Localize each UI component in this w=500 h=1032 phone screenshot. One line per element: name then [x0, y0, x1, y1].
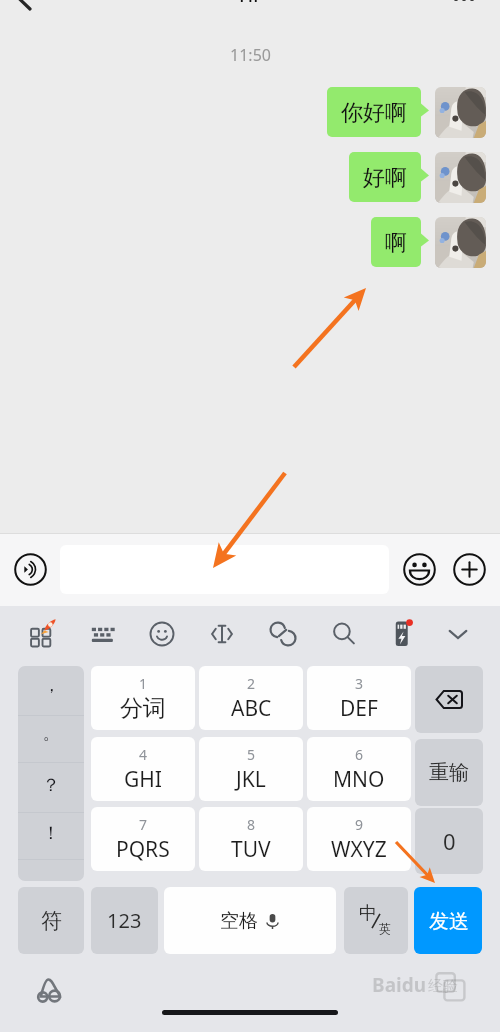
button[interactable]: 发送 [414, 887, 482, 954]
button[interactable]: 重输 [415, 739, 483, 806]
button[interactable]: cursor [202, 614, 242, 654]
button[interactable]: 9 [307, 807, 411, 871]
button[interactable]: link [263, 614, 303, 654]
staticText: 11:50 [230, 44, 271, 66]
button[interactable] [435, 152, 486, 203]
staticText: TUV [231, 835, 271, 864]
button[interactable]: 1 [91, 666, 195, 730]
button[interactable]: 5 [199, 737, 303, 801]
button[interactable]: 符 [18, 887, 84, 954]
staticText: 经验 [428, 977, 458, 996]
button[interactable]: Back [4, 0, 44, 14]
button[interactable] [435, 87, 486, 138]
button[interactable]: search [324, 614, 364, 654]
button[interactable]: ！ [18, 812, 84, 859]
button[interactable]: 2 [199, 666, 303, 730]
staticText: 1 [139, 674, 148, 693]
staticText: 你好啊 [341, 99, 407, 127]
staticText: WXYZ [331, 835, 387, 864]
staticText: 9 [355, 815, 364, 834]
staticText: 6 [355, 745, 364, 764]
button[interactable]: 4 [91, 737, 195, 801]
button[interactable]: down [438, 614, 478, 654]
staticText: 123 [107, 907, 142, 934]
button[interactable]: 空格 [164, 887, 336, 954]
button[interactable]: ， [18, 666, 84, 715]
button[interactable]: 你好啊 [327, 87, 421, 137]
staticText: 空格 [220, 909, 258, 933]
button[interactable] [435, 217, 486, 268]
staticText: 好啊 [363, 164, 407, 192]
staticText: 中 [359, 902, 377, 925]
button[interactable]: k40 [382, 614, 422, 654]
button[interactable] [60, 545, 389, 594]
staticText: 3 [355, 674, 364, 693]
button[interactable]: 7 [91, 807, 195, 871]
staticText: JKL [236, 765, 266, 794]
staticText: DEF [340, 694, 378, 723]
button[interactable]: ？ [18, 762, 84, 812]
staticText: 重输 [429, 760, 469, 785]
staticText: GHI [124, 765, 162, 794]
staticText: 5 [247, 745, 256, 764]
button[interactable]: 好啊 [349, 152, 421, 202]
staticText: 0 [443, 826, 456, 856]
staticText: Hi [239, 0, 259, 8]
button[interactable]: 6 [307, 737, 411, 801]
button[interactable]: More options [453, 553, 486, 586]
button[interactable]: 。 [18, 715, 84, 762]
staticText: 啊 [385, 229, 407, 257]
staticText: Baidu [372, 972, 427, 998]
button[interactable]: kbd [83, 614, 123, 654]
button[interactable]: Voice input [14, 553, 47, 586]
staticText: MNO [333, 765, 385, 794]
staticText: ！ [42, 822, 60, 845]
button[interactable]: 中 [344, 887, 408, 954]
staticText: ， [43, 675, 60, 696]
button[interactable] [18, 859, 84, 881]
button[interactable]: 啊 [371, 217, 421, 267]
staticText: 英 [379, 921, 391, 936]
staticText: ？ [42, 774, 60, 797]
button[interactable]: Backspace [415, 666, 483, 733]
staticText: PQRS [116, 835, 170, 864]
staticText: 。 [43, 723, 60, 744]
button[interactable]: More [450, 0, 484, 10]
staticText: 2 [247, 674, 256, 693]
staticText: 8 [247, 815, 256, 834]
button[interactable]: 0 [415, 808, 483, 874]
staticText: 4 [139, 745, 148, 764]
button[interactable]: 8 [199, 807, 303, 871]
button[interactable]: grid [22, 614, 62, 654]
button[interactable]: 123 [91, 887, 158, 954]
button[interactable]: Baidu input method [36, 978, 63, 1003]
staticText: 发送 [429, 909, 469, 934]
staticText: 7 [139, 815, 148, 834]
button[interactable]: Emoji [403, 553, 436, 586]
button[interactable]: 3 [307, 666, 411, 730]
staticText: 分词 [120, 694, 166, 723]
staticText: ABC [231, 694, 272, 723]
button[interactable]: emoji [142, 614, 182, 654]
staticText: 符 [41, 908, 62, 934]
